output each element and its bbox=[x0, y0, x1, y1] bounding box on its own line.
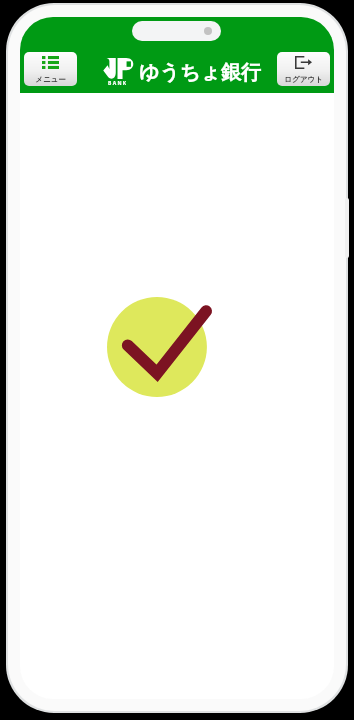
button[interactable]: ログアウト bbox=[277, 52, 330, 86]
staticText: ゆうちょ銀行 bbox=[139, 60, 261, 85]
staticText: メニュー bbox=[35, 75, 66, 84]
staticText: ログアウト bbox=[284, 75, 323, 84]
button[interactable]: メニュー bbox=[24, 52, 77, 86]
staticText: B A N K bbox=[108, 80, 127, 87]
